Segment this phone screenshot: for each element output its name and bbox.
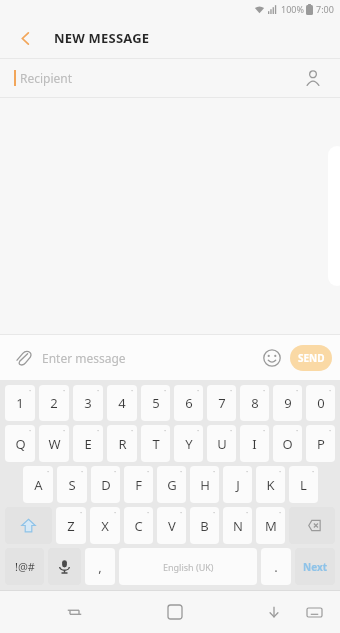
button[interactable]: 9 [273,385,302,421]
staticText: Y [185,435,193,453]
button[interactable]: P [306,425,335,462]
staticText: 7:00 [316,3,334,15]
staticText: · [131,385,134,396]
staticText: F [135,476,142,494]
staticText: J [236,476,240,494]
button[interactable]: C [124,507,153,544]
staticText: !@# [15,559,35,574]
button[interactable]: W [39,425,69,462]
staticText: · [180,507,183,518]
staticText: M [265,517,277,535]
button[interactable]: 8 [240,385,269,421]
staticText: Z [67,517,75,535]
staticText: NEW MESSAGE [54,29,150,47]
button[interactable]: SEND [290,345,332,371]
button[interactable]: Key [5,548,44,585]
staticText: 8 [251,394,259,412]
button[interactable]: 2 [39,385,69,421]
staticText: Next [303,560,328,574]
button[interactable]: E [73,425,103,462]
button[interactable]: U [207,425,236,462]
button[interactable]: K [256,466,285,503]
button[interactable]: B [190,507,219,544]
staticText: · [29,425,32,436]
button[interactable]: 4 [107,385,137,421]
button[interactable]: Z [56,507,86,544]
staticText: 7 [218,394,226,412]
staticText: 4 [118,394,126,412]
staticText: SEND [298,351,325,365]
button[interactable]: Attach [10,345,36,371]
staticText: · [131,425,134,436]
staticText: · [279,507,282,518]
button[interactable]: F [124,466,153,503]
staticText: A [34,476,43,494]
staticText: · [114,507,117,518]
button[interactable]: Key [48,548,81,585]
button[interactable]: G [157,466,186,503]
button[interactable]: 5 [141,385,170,421]
button[interactable]: X [90,507,120,544]
staticText: I [252,435,257,453]
button[interactable]: . [261,548,291,585]
staticText: K [266,476,275,494]
button[interactable]: Back [8,21,42,55]
button[interactable]: 1 [5,385,35,421]
button[interactable]: Contacts [300,65,326,91]
button[interactable]: Y [174,425,203,462]
button[interactable]: R [107,425,137,462]
button[interactable]: English (UK) [119,548,257,585]
staticText: · [246,507,249,518]
button[interactable]: 0 [306,385,335,421]
button[interactable]: 3 [73,385,103,421]
button[interactable]: I [240,425,269,462]
staticText: 6 [185,394,193,412]
button[interactable]: 6 [174,385,203,421]
button[interactable]: N [223,507,252,544]
button[interactable]: Keyboard [296,594,332,630]
staticText: R [118,435,127,453]
button[interactable]: T [141,425,170,462]
staticText: P [317,435,325,453]
staticText: D [101,476,111,494]
staticText: · [147,507,150,518]
button[interactable]: S [57,466,87,503]
staticText: · [197,425,200,436]
button[interactable]: L [289,466,318,503]
staticText: · [114,466,117,477]
button[interactable]: Recents [54,592,94,632]
staticText: · [246,466,249,477]
button[interactable]: Q [5,425,35,462]
staticText: L [300,476,307,494]
button[interactable]: A [23,466,53,503]
button[interactable]: M [256,507,285,544]
staticText: O [282,435,293,453]
button[interactable]: 7 [207,385,236,421]
staticText: Enter message [42,350,126,366]
staticText: 1 [16,394,24,412]
button[interactable]: Hide keyboard [256,594,292,630]
button[interactable]: Key [295,548,335,585]
staticText: · [329,385,332,396]
staticText: H [200,476,210,494]
button[interactable]: Key [5,507,52,544]
staticText: · [47,466,50,477]
staticText: · [296,425,299,436]
staticText: · [312,466,315,477]
staticText: 3 [84,394,92,412]
button[interactable]: Home [155,592,195,632]
staticText: · [147,466,150,477]
button[interactable]: , [85,548,115,585]
button[interactable]: V [157,507,186,544]
staticText: · [180,466,183,477]
button[interactable]: Emoji [258,344,286,372]
button[interactable]: H [190,466,219,503]
staticText: Q [15,435,26,453]
button[interactable]: D [91,466,120,503]
button[interactable]: O [273,425,302,462]
staticText: · [213,507,216,518]
button[interactable]: J [223,466,252,503]
staticText: S [68,476,76,494]
staticText: · [164,425,167,436]
button[interactable]: Key [289,507,335,544]
